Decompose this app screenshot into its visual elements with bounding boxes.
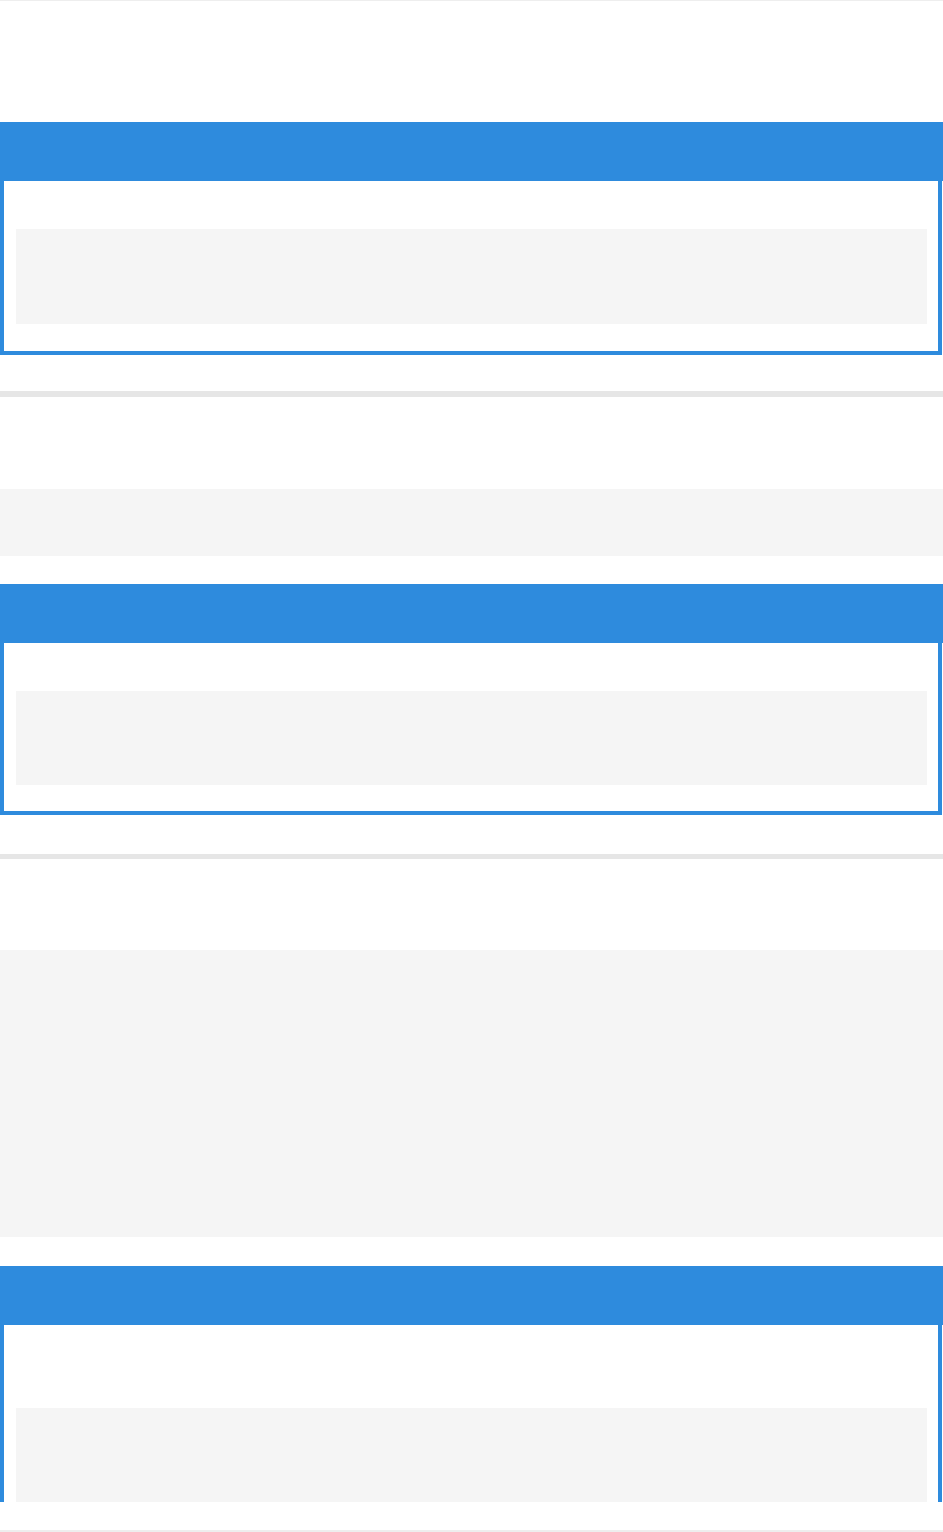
button[interactable]: Section three details [4,1325,938,1502]
button[interactable]: Section one details [4,181,938,351]
button[interactable]: Section two details [4,643,938,811]
